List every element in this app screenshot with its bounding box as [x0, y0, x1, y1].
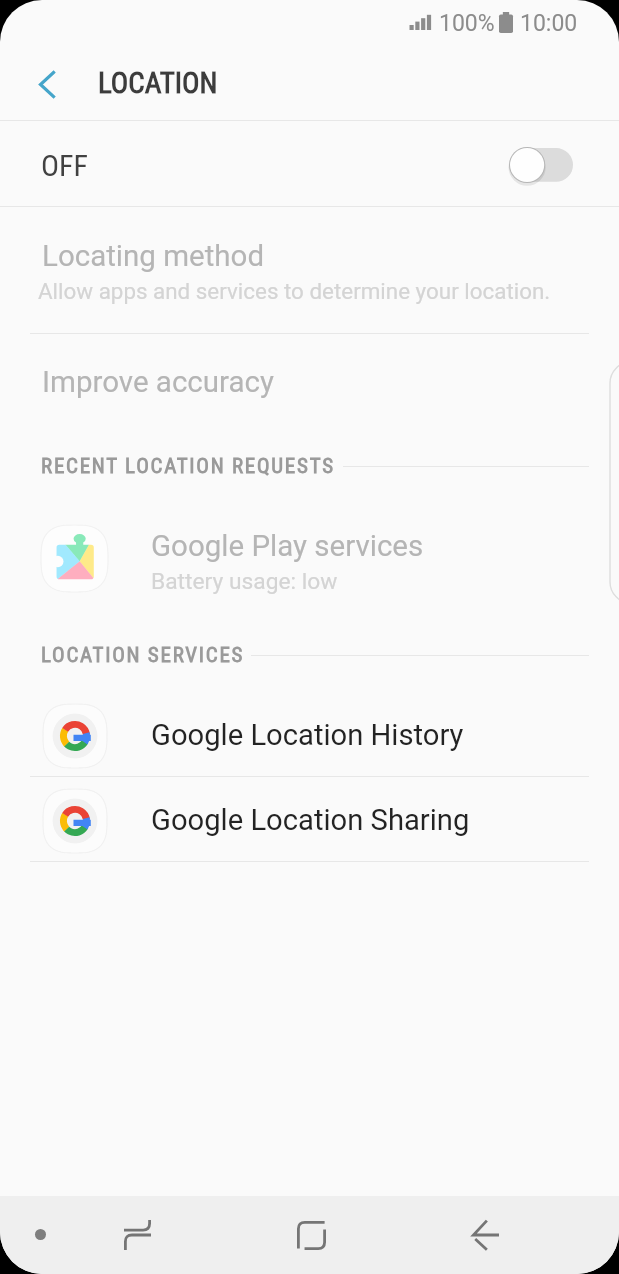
- button[interactable]: Navigate up: [0, 48, 94, 120]
- staticText: LOCATION: [98, 66, 218, 100]
- button[interactable]: Navigation hint: [10, 1204, 70, 1264]
- staticText: RECENT LOCATION REQUESTS: [41, 454, 335, 479]
- button[interactable]: [0, 776, 619, 860]
- staticText: Google Play services: [151, 529, 424, 564]
- staticText: LOCATION SERVICES: [41, 643, 245, 668]
- staticText: Google Location Sharing: [151, 803, 470, 837]
- staticText: OFF: [41, 148, 88, 183]
- button[interactable]: [0, 692, 619, 776]
- button[interactable]: [0, 121, 619, 207]
- button[interactable]: Back: [398, 1196, 572, 1274]
- button[interactable]: [0, 516, 619, 608]
- staticText: Improve accuracy: [42, 365, 274, 400]
- button[interactable]: [0, 334, 619, 419]
- staticText: 100%: [439, 10, 495, 37]
- staticText: Google Location History: [151, 718, 464, 752]
- button[interactable]: Home: [224, 1196, 398, 1274]
- staticText: Battery usage: low: [151, 568, 338, 595]
- button[interactable]: [0, 208, 619, 333]
- button[interactable]: Recent apps: [50, 1196, 224, 1274]
- staticText: 10:00: [520, 10, 578, 37]
- staticText: Allow apps and services to determine you…: [38, 278, 551, 304]
- staticText: Locating method: [42, 239, 265, 274]
